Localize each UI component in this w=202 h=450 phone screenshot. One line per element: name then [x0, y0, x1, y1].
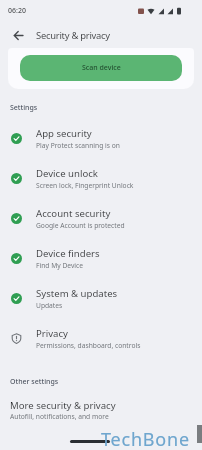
button[interactable]: App security	[0, 118, 202, 158]
staticText: Other settings	[10, 377, 59, 387]
staticText: System & updates	[36, 287, 118, 300]
staticText: More security & privacy	[10, 399, 116, 412]
button[interactable]: Account security	[0, 198, 202, 238]
staticText: Privacy	[36, 327, 68, 340]
staticText: Play Protect scanning is on	[36, 141, 120, 150]
staticText: Autofill, notifications, and more	[10, 412, 109, 421]
staticText: Settings	[10, 103, 38, 113]
staticText: App security	[36, 127, 92, 140]
button[interactable]: Privacy	[0, 318, 202, 358]
staticText: Scan device	[82, 63, 121, 73]
button[interactable]: Device finders	[0, 238, 202, 278]
button[interactable]: More security & privacy	[0, 399, 202, 421]
staticText: Screen lock, Fingerprint Unlock	[36, 181, 134, 190]
staticText: Account security	[36, 207, 111, 220]
staticText: Device unlock	[36, 167, 98, 180]
staticText: Device finders	[36, 247, 100, 260]
button[interactable]: System & updates	[0, 278, 202, 318]
staticText: Google Account is protected	[36, 221, 125, 230]
staticText: 06:20	[8, 6, 26, 16]
button[interactable]: Scan device	[20, 55, 182, 81]
staticText: Find My Device	[36, 261, 84, 270]
staticText: TechBone	[101, 427, 190, 450]
staticText: Permissions, dashboard, controls	[36, 341, 141, 350]
staticText: Security & privacy	[36, 29, 110, 42]
button[interactable]: Device unlock	[0, 158, 202, 198]
button[interactable]	[0, 22, 36, 48]
staticText: Updates	[36, 301, 63, 310]
